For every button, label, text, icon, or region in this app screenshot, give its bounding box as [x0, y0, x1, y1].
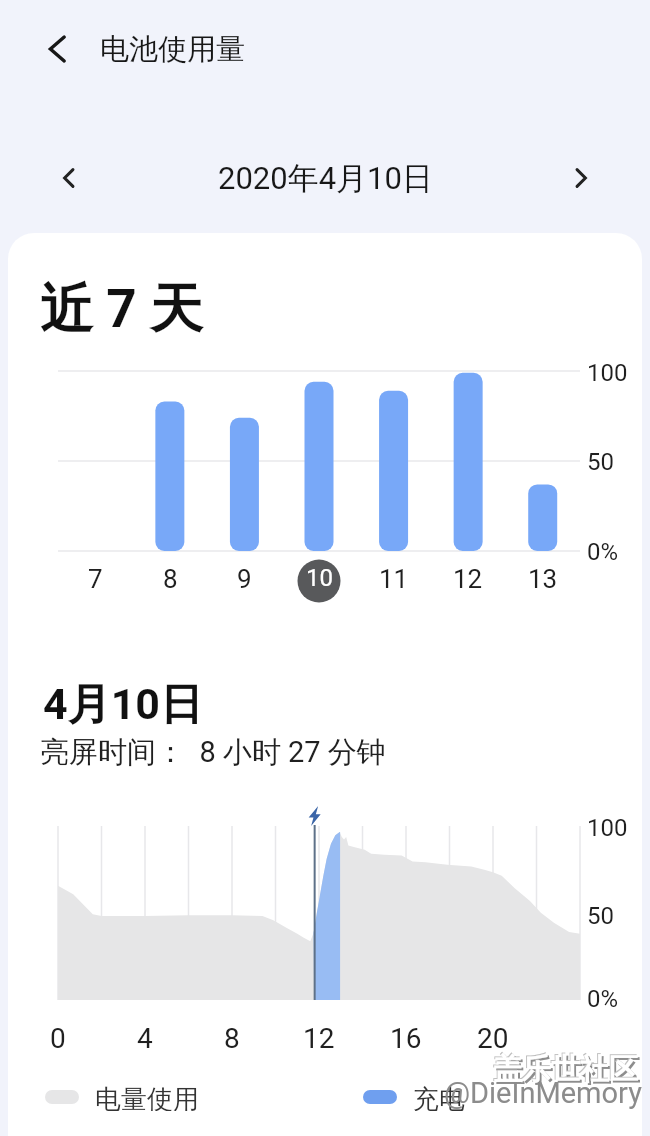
staticText: 13 [528, 564, 558, 594]
staticText: 7 [88, 564, 103, 594]
staticText: @DieInMemory [444, 1076, 642, 1110]
staticText: 4月10日 [43, 678, 204, 732]
staticText: 近 7 天 [40, 276, 203, 343]
staticText: 10 [306, 564, 333, 592]
staticText: 20 [477, 1022, 509, 1055]
staticText: 11 [379, 564, 409, 594]
button[interactable] [42, 34, 72, 64]
staticText: 100 [587, 814, 628, 842]
button[interactable] [570, 167, 592, 189]
staticText: 4 [137, 1022, 153, 1055]
button[interactable] [58, 167, 80, 189]
staticText: 2020年4月10日 [218, 159, 433, 198]
staticText: 16 [390, 1022, 422, 1055]
button[interactable]: 充电 [363, 1083, 465, 1111]
staticText: 亮屏时间： 8 小时 27 分钟 [40, 734, 386, 771]
button[interactable]: 电池使用量 [0, 19, 650, 79]
staticText: 电池使用量 [100, 31, 245, 68]
button[interactable]: 电量使用 [45, 1083, 199, 1111]
staticText: 充电 [413, 1083, 465, 1111]
staticText: 盖乐世社区 [493, 1051, 638, 1088]
staticText: 50 [587, 448, 614, 476]
staticText: 0% [587, 538, 619, 566]
staticText: 0% [587, 985, 619, 1013]
staticText: 50 [587, 902, 614, 930]
staticText: 12 [453, 564, 483, 594]
staticText: 9 [237, 564, 252, 594]
button[interactable]: 2020年4月10日 [218, 159, 433, 198]
staticText: 8 [224, 1022, 240, 1055]
staticText: 8 [163, 564, 178, 594]
staticText: 12 [303, 1022, 335, 1055]
staticText: 盖乐世社区 [492, 1050, 637, 1087]
staticText: 100 [587, 359, 628, 387]
staticText: 0 [50, 1022, 66, 1055]
staticText: 盖乐世社区 [495, 1053, 640, 1090]
staticText: 电量使用 [95, 1083, 199, 1111]
